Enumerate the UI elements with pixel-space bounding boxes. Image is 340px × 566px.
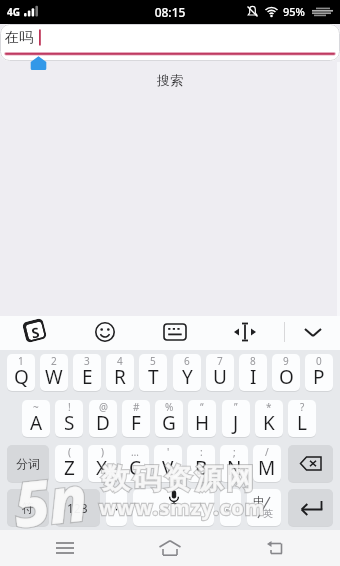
staticText: / [265,445,269,459]
staticText: K [263,410,275,436]
staticText: ” [234,400,238,414]
button[interactable] [90,318,120,346]
button[interactable]: 4 [106,354,134,391]
button[interactable]: 7 [206,354,234,391]
staticText: 5 [150,354,156,368]
staticText: 2 [51,354,57,368]
button[interactable]: 8 [239,354,267,391]
button[interactable]: % [155,400,183,437]
staticText: 数码资源网 [100,461,255,496]
button[interactable]: ， [106,489,127,526]
button[interactable]: … [121,445,149,482]
staticText: A [30,410,43,436]
staticText: 5n [10,454,91,546]
button[interactable]: ! [55,400,83,437]
button[interactable] [47,530,83,566]
button[interactable] [288,489,333,526]
staticText: G [162,410,176,436]
staticText: 0 [316,354,322,368]
staticText: Y [182,364,193,390]
staticText: L [297,410,307,436]
button[interactable]: # [122,400,150,437]
button[interactable]: : [187,445,215,482]
staticText: 4 [117,354,123,368]
staticText: 数码资源网 [100,461,255,496]
staticText: I [250,364,257,390]
staticText: 8 [250,354,256,368]
button[interactable]: 5 [139,354,167,391]
button[interactable]: @ [89,400,117,437]
staticText: X [96,455,108,481]
button[interactable]: 3 [73,354,101,391]
button[interactable]: ( [55,445,83,482]
staticText: @ [99,400,108,414]
button[interactable]: ~ [22,400,50,437]
staticText: 4G [7,5,20,19]
staticText: P [313,364,325,390]
staticText: … [131,445,139,459]
staticText: E [82,364,93,390]
button[interactable]: ? [288,400,316,437]
button[interactable]: 9 [272,354,300,391]
staticText: R [114,364,126,390]
staticText: 123 [67,500,88,516]
button[interactable]: 6 [173,354,201,391]
staticText: 英 [263,507,273,520]
button[interactable] [257,530,293,566]
button[interactable] [160,318,190,346]
staticText: 。 [225,499,236,513]
staticText: : [200,445,203,459]
button[interactable]: ; [220,445,248,482]
staticText: ' [167,445,170,459]
button[interactable]: 0 [305,354,333,391]
staticText: ) [101,445,104,459]
button[interactable] [298,318,328,346]
button[interactable]: 2 [40,354,68,391]
staticText: 1 [18,354,24,368]
staticText: J [233,410,239,436]
button[interactable]: ) [88,445,116,482]
staticText: 搜索 [0,72,340,88]
button[interactable] [133,489,214,526]
staticText: F [131,410,141,436]
staticText: Q [14,364,29,390]
staticText: B [195,455,208,481]
button[interactable]: 在吗 [0,24,340,61]
button[interactable]: 。 [220,489,241,526]
staticText: ? [300,400,305,414]
button[interactable]: 1 [7,354,35,391]
button[interactable]: 符 [7,489,49,526]
staticText: 3 [84,354,90,368]
button[interactable]: 123 [55,489,100,526]
staticText: C [129,455,142,481]
button[interactable]: ' [154,445,182,482]
button[interactable]: 中 [247,489,281,526]
button[interactable] [230,318,260,346]
staticText: “ [200,400,204,414]
staticText: 95% [283,4,305,19]
staticText: www.smzy.com [99,494,266,521]
button[interactable] [152,530,188,566]
staticText: 在吗 [5,29,33,47]
staticText: 7 [217,354,223,368]
staticText: www.smzy.com [99,494,266,521]
button[interactable]: ” [222,400,250,437]
button[interactable]: 分词 [7,445,49,482]
staticText: V [162,455,174,481]
button[interactable]: / [253,445,281,482]
staticText: 5n [10,454,91,546]
staticText: 符 [22,500,34,515]
staticText: D [96,410,110,436]
button[interactable]: “ [188,400,216,437]
button[interactable] [288,445,333,482]
staticText: U [213,364,227,390]
staticText: # [133,400,140,414]
staticText: O [279,364,294,390]
staticText: 9 [283,354,289,368]
staticText: ( [68,445,71,459]
staticText: ; [233,445,236,459]
button[interactable]: * [255,400,283,437]
staticText: S [64,410,75,436]
staticText: 6 [184,354,190,368]
button[interactable]: S [22,318,47,343]
